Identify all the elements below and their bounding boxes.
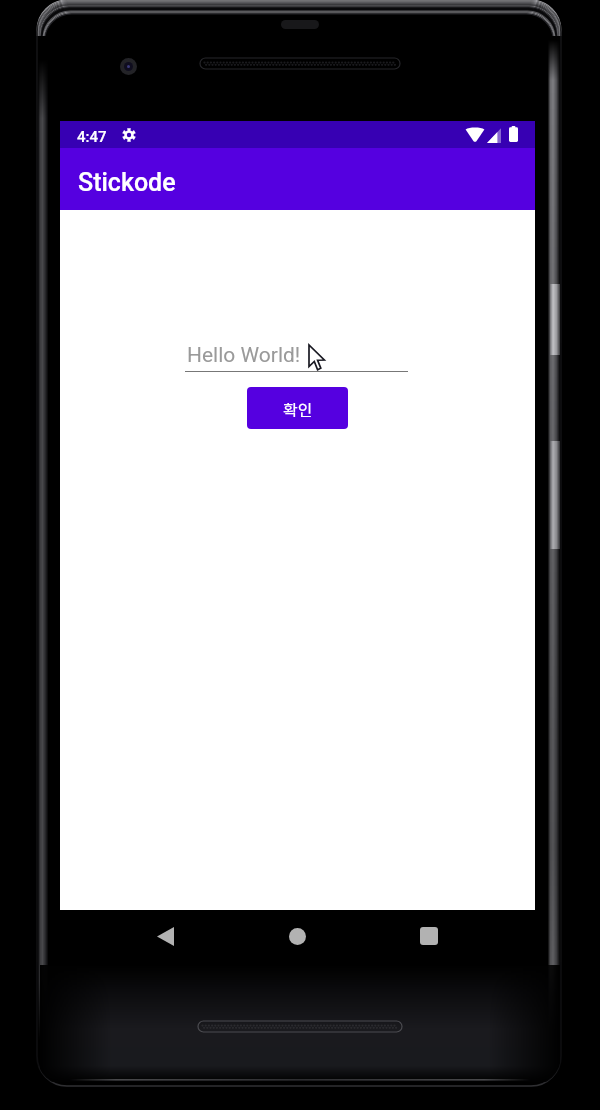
staticText: Stickode [78,168,176,197]
button[interactable]: Back [140,911,190,961]
button[interactable]: Home [272,911,322,961]
button[interactable]: Recent apps [404,911,454,961]
staticText: Hello World! [187,343,301,368]
staticText: 4:47 [77,128,107,146]
button[interactable]: 확인 [247,387,348,429]
staticText: 확인 [283,397,313,420]
button[interactable]: Hello World! [185,332,408,372]
